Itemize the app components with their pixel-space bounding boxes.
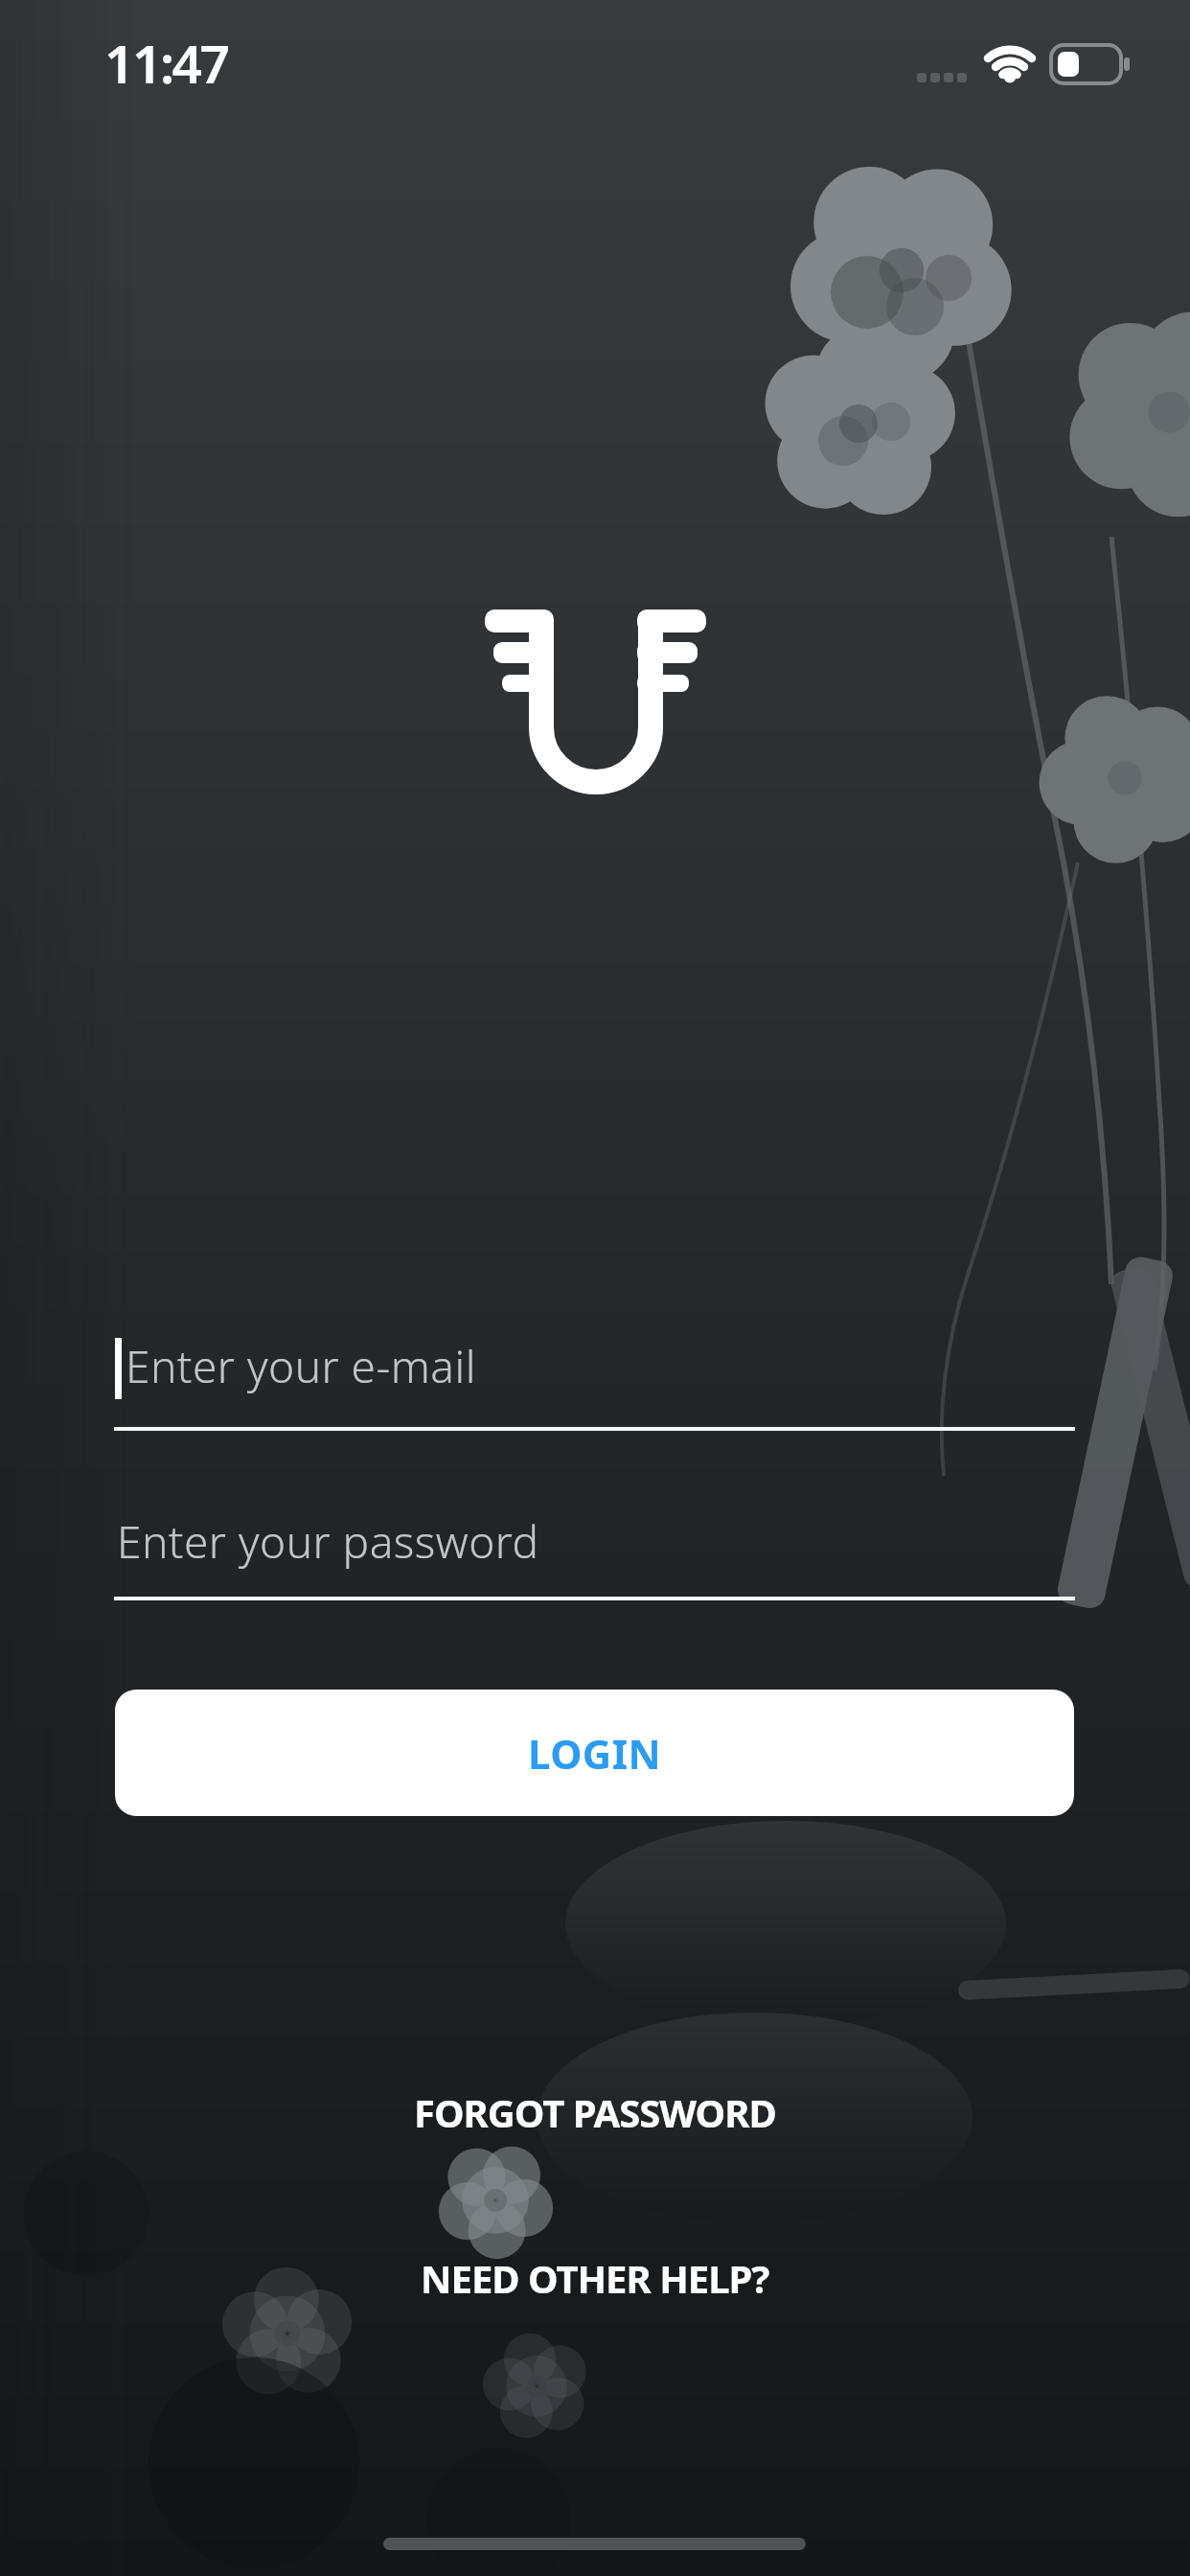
button[interactable]: Enter your e-mail: [114, 1322, 1075, 1433]
staticText: FORGOT PASSWORD: [414, 2086, 776, 2138]
staticText: LOGIN: [528, 1726, 662, 1781]
staticText: Enter your e-mail: [126, 1336, 476, 1396]
button[interactable]: FORGOT PASSWORD: [395, 2075, 795, 2150]
staticText: 11:47: [104, 27, 228, 99]
button[interactable]: NEED OTHER HELP?: [401, 2241, 789, 2315]
button[interactable]: LOGIN: [115, 1690, 1074, 1816]
staticText: NEED OTHER HELP?: [421, 2252, 769, 2304]
button[interactable]: Enter your password: [114, 1493, 1075, 1602]
staticText: Enter your password: [117, 1511, 539, 1572]
